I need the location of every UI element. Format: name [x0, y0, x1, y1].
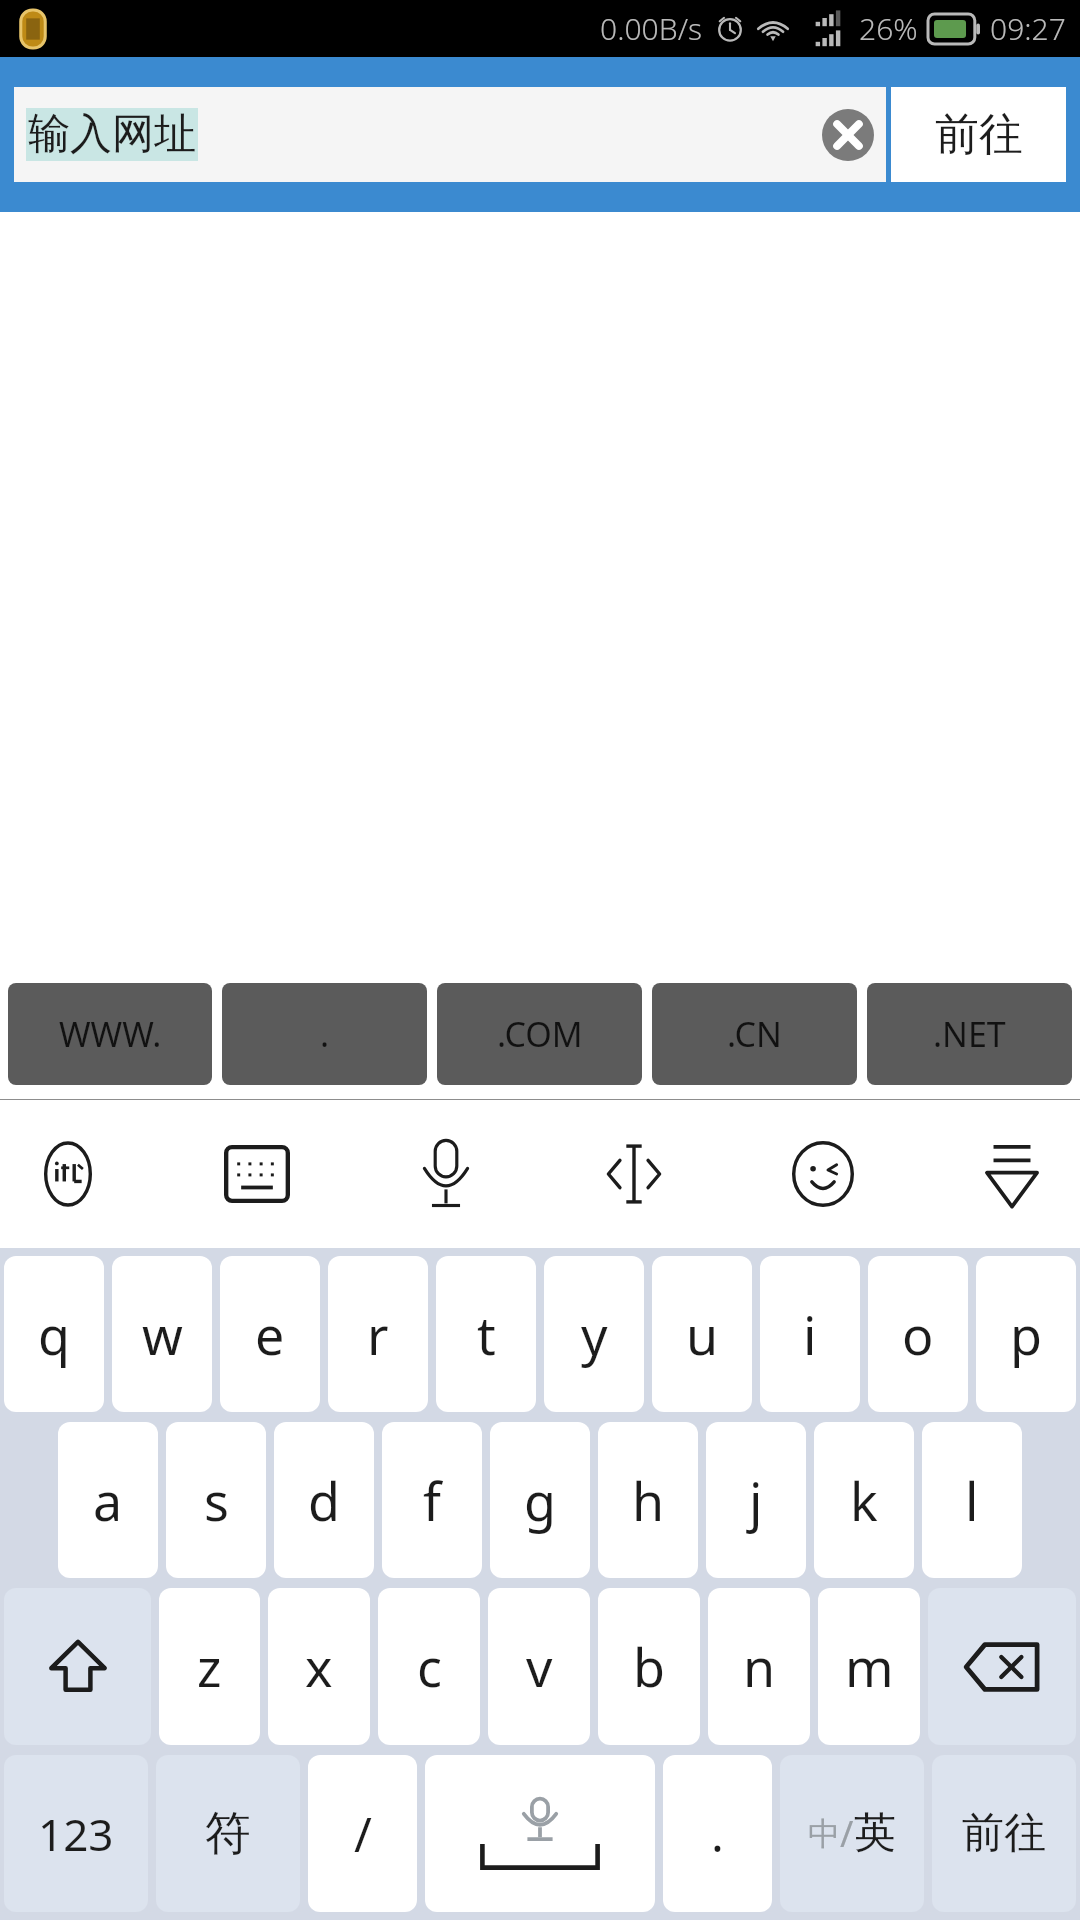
button[interactable]: r: [328, 1256, 428, 1412]
button[interactable]: q: [4, 1256, 104, 1412]
staticText: x: [305, 1631, 333, 1702]
staticText: /: [354, 1801, 372, 1866]
button[interactable]: v: [488, 1588, 590, 1745]
staticText: j: [749, 1465, 763, 1536]
staticText: h: [632, 1465, 665, 1536]
staticText: m: [845, 1631, 894, 1702]
button[interactable]: f: [382, 1422, 482, 1578]
button[interactable]: g: [490, 1422, 590, 1578]
staticText: a: [93, 1465, 123, 1536]
button[interactable]: p: [976, 1256, 1076, 1412]
button[interactable]: .COM: [437, 983, 642, 1085]
button[interactable]: Voice input: [396, 1124, 496, 1224]
staticText: 26%: [859, 8, 918, 49]
staticText: i: [803, 1299, 817, 1370]
staticText: o: [902, 1299, 934, 1370]
staticText: .: [711, 1801, 724, 1866]
button[interactable]: e: [220, 1256, 320, 1412]
staticText: b: [633, 1631, 665, 1702]
staticText: 中: [808, 1814, 840, 1854]
staticText: 09:27: [990, 8, 1066, 49]
button[interactable]: x: [268, 1588, 370, 1745]
button[interactable]: Hide keyboard: [962, 1124, 1062, 1224]
staticText: s: [204, 1465, 229, 1536]
button[interactable]: Shift: [4, 1588, 151, 1745]
button[interactable]: m: [818, 1588, 920, 1745]
button[interactable]: Emoji: [773, 1124, 873, 1224]
button[interactable]: .: [663, 1755, 772, 1912]
staticText: 前往: [962, 1807, 1046, 1860]
button[interactable]: .NET: [867, 983, 1072, 1085]
staticText: 英: [854, 1807, 896, 1860]
staticText: r: [367, 1299, 389, 1370]
button[interactable]: a: [58, 1422, 158, 1578]
staticText: /: [840, 1809, 854, 1858]
button[interactable]: 输入网址: [14, 87, 886, 182]
button[interactable]: u: [652, 1256, 752, 1412]
button[interactable]: Keyboard layout: [207, 1124, 307, 1224]
staticText: .COM: [497, 1011, 583, 1057]
button[interactable]: b: [598, 1588, 700, 1745]
staticText: 123: [38, 1804, 114, 1864]
button[interactable]: h: [598, 1422, 698, 1578]
button[interactable]: Cursor move: [584, 1124, 684, 1224]
button[interactable]: t: [436, 1256, 536, 1412]
staticText: 前往: [935, 107, 1023, 162]
button[interactable]: n: [708, 1588, 810, 1745]
staticText: n: [743, 1631, 776, 1702]
button[interactable]: k: [814, 1422, 914, 1578]
staticText: p: [1010, 1299, 1042, 1370]
staticText: q: [38, 1299, 70, 1370]
button[interactable]: j: [706, 1422, 806, 1578]
staticText: WWW.: [59, 1011, 162, 1057]
staticText: .NET: [933, 1011, 1006, 1057]
button[interactable]: 123: [4, 1755, 148, 1912]
staticText: 符: [205, 1805, 251, 1863]
staticText: z: [197, 1631, 222, 1702]
button[interactable]: 符: [156, 1755, 300, 1912]
button[interactable]: Space: [425, 1755, 655, 1912]
button[interactable]: Clear: [822, 109, 874, 161]
button[interactable]: /: [308, 1755, 417, 1912]
staticText: f: [423, 1465, 441, 1536]
button[interactable]: 中: [780, 1755, 924, 1912]
staticText: w: [142, 1299, 183, 1370]
button[interactable]: WWW.: [8, 983, 212, 1085]
button[interactable]: y: [544, 1256, 644, 1412]
staticText: y: [581, 1299, 608, 1370]
staticText: c: [417, 1631, 442, 1702]
staticText: t: [477, 1299, 496, 1370]
button[interactable]: c: [378, 1588, 480, 1745]
button[interactable]: .: [222, 983, 427, 1085]
button[interactable]: o: [868, 1256, 968, 1412]
button[interactable]: i: [760, 1256, 860, 1412]
button[interactable]: Backspace: [928, 1588, 1076, 1745]
button[interactable]: .CN: [652, 983, 857, 1085]
staticText: v: [526, 1631, 553, 1702]
staticText: e: [255, 1299, 285, 1370]
button[interactable]: 前往: [932, 1755, 1076, 1912]
button[interactable]: w: [112, 1256, 212, 1412]
staticText: .: [320, 1011, 330, 1057]
button[interactable]: s: [166, 1422, 266, 1578]
staticText: .CN: [727, 1011, 782, 1057]
button[interactable]: z: [159, 1588, 260, 1745]
staticText: l: [965, 1465, 979, 1536]
button[interactable]: l: [922, 1422, 1022, 1578]
staticText: 输入网址: [28, 108, 196, 161]
staticText: k: [850, 1465, 878, 1536]
staticText: d: [308, 1465, 340, 1536]
button[interactable]: d: [274, 1422, 374, 1578]
staticText: g: [524, 1465, 556, 1536]
staticText: u: [686, 1299, 719, 1370]
staticText: 0.00B/s: [600, 8, 703, 49]
button[interactable]: Input method: [18, 1124, 118, 1224]
button[interactable]: 前往: [891, 87, 1066, 182]
